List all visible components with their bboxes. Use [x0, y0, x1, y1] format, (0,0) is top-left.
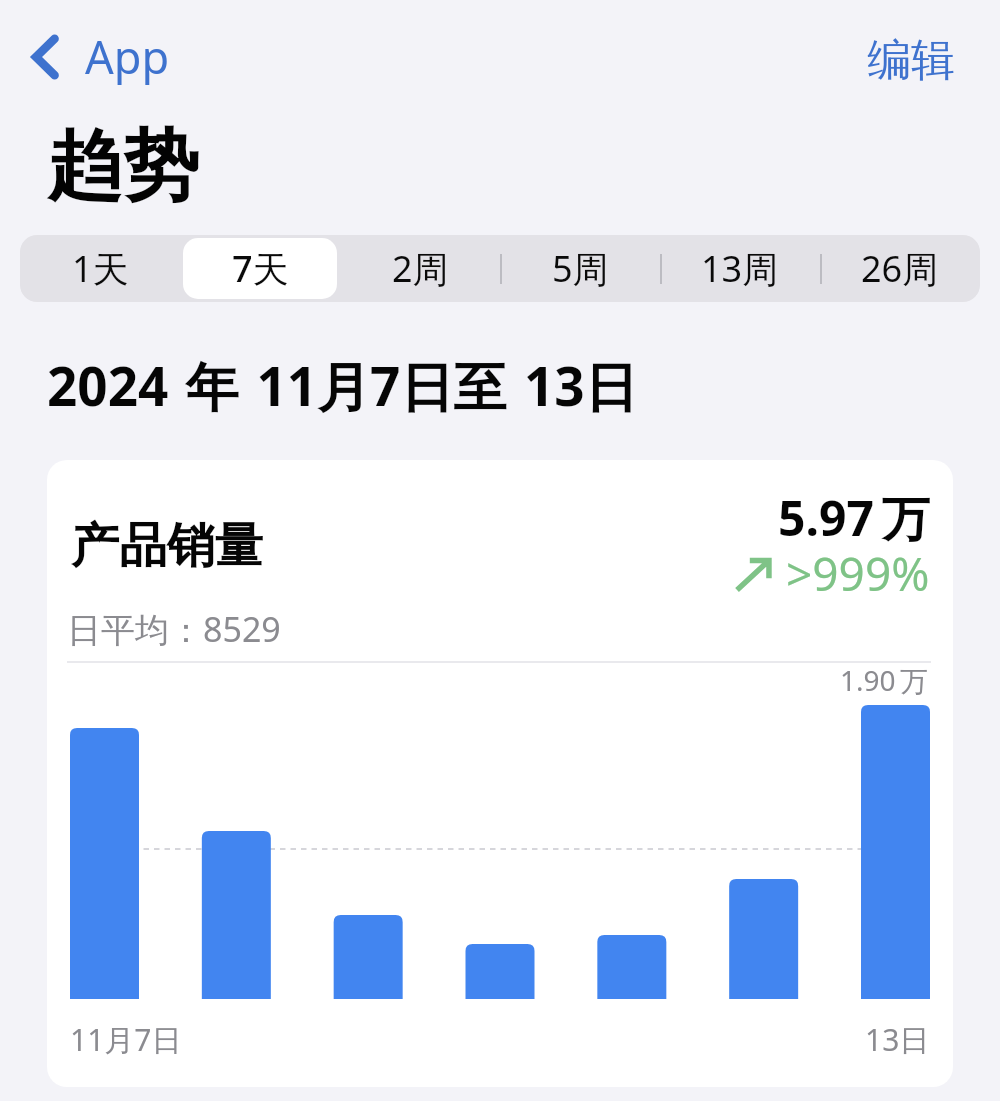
staticText: 编辑 — [867, 33, 955, 88]
staticText: 5.97 万 — [778, 485, 930, 551]
other: Back — [30, 33, 60, 81]
button[interactable]: 1天 — [20, 235, 180, 302]
staticText: 1.90 万 — [840, 661, 929, 699]
staticText: 5周 — [552, 244, 609, 293]
staticText: >999% — [786, 542, 930, 605]
button[interactable]: 编辑 — [861, 27, 961, 94]
staticText: 13日 — [865, 1019, 930, 1060]
staticText: 7天 — [232, 244, 289, 293]
button[interactable]: 5周 — [500, 235, 660, 302]
button[interactable]: Back — [26, 22, 174, 91]
button[interactable]: 2周 — [340, 235, 500, 302]
staticText: App — [85, 26, 170, 87]
staticText: 1天 — [72, 244, 129, 293]
staticText: 13周 — [701, 244, 779, 293]
staticText: 11月7日 — [70, 1019, 182, 1060]
staticText: 2周 — [392, 244, 449, 293]
staticText: 产品销量 — [71, 516, 263, 576]
staticText: 2024 年 11月7日至 13日 — [47, 349, 638, 421]
staticText: 趋势 — [47, 119, 199, 215]
button[interactable]: 13周 — [660, 235, 820, 302]
button[interactable]: 26周 — [820, 235, 980, 302]
button[interactable]: 7天 — [180, 235, 340, 302]
staticText: 日平均：8529 — [67, 606, 281, 652]
staticText: 26周 — [861, 244, 939, 293]
